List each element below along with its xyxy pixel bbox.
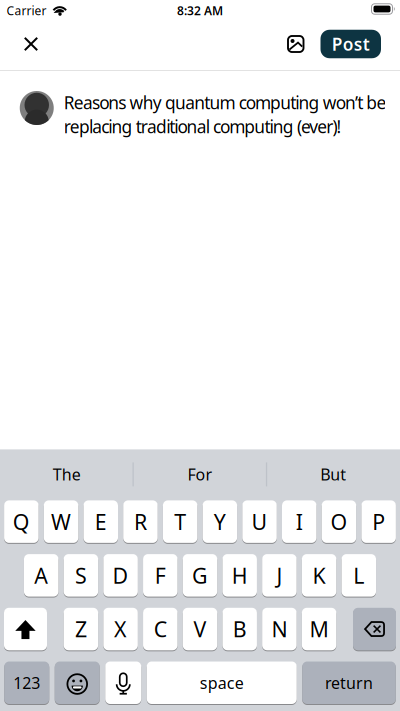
button[interactable]: U	[242, 500, 277, 543]
staticText: But	[320, 464, 346, 485]
staticText: X	[114, 615, 127, 643]
staticText: A	[34, 561, 48, 589]
staticText: W	[51, 507, 71, 536]
button[interactable]: But	[267, 449, 400, 499]
staticText: The	[53, 464, 81, 485]
button[interactable]: C	[143, 607, 178, 651]
staticText: space	[200, 672, 244, 693]
staticText: H	[232, 561, 248, 589]
button[interactable]: D	[103, 554, 138, 597]
button[interactable]: H	[222, 554, 257, 597]
staticText: N	[271, 615, 287, 643]
button[interactable]: Emoji	[55, 661, 100, 704]
button[interactable]: Post	[320, 30, 381, 58]
staticText: 8:32 AM	[177, 2, 223, 18]
button[interactable]: I	[282, 500, 316, 543]
button[interactable]: K	[302, 554, 336, 597]
staticText: E	[95, 507, 107, 536]
button[interactable]: M	[302, 607, 336, 651]
button[interactable]: G	[183, 554, 217, 597]
button[interactable]: return	[302, 661, 396, 704]
staticText: Carrier	[6, 2, 46, 18]
button[interactable]: Attach image	[288, 36, 320, 52]
staticText: P	[372, 507, 385, 536]
staticText: O	[330, 507, 347, 536]
staticText: K	[313, 561, 326, 589]
button[interactable]: A	[24, 554, 58, 597]
staticText: B	[233, 615, 247, 643]
button[interactable]: T	[163, 500, 197, 543]
button[interactable]: Close	[0, 37, 38, 51]
button[interactable]: X	[103, 607, 138, 651]
staticText: C	[154, 615, 167, 643]
staticText: R	[134, 507, 147, 536]
button[interactable]: V	[183, 607, 217, 651]
staticText: J	[276, 561, 282, 589]
button[interactable]: Delete	[353, 607, 396, 651]
staticText: F	[155, 561, 166, 589]
button[interactable]: N	[262, 607, 297, 651]
button[interactable]: Q	[4, 500, 39, 543]
button[interactable]: F	[143, 554, 178, 597]
button[interactable]: E	[83, 500, 118, 543]
button[interactable]: Y	[203, 500, 237, 543]
button[interactable]: The	[0, 449, 133, 499]
staticText: S	[75, 561, 87, 589]
button[interactable]: J	[262, 554, 297, 597]
button[interactable]: O	[322, 500, 356, 543]
button[interactable]: For	[133, 449, 267, 499]
staticText: T	[174, 507, 186, 536]
staticText: L	[353, 561, 364, 589]
staticText: V	[193, 615, 206, 643]
staticText: Z	[75, 615, 87, 643]
staticText: For	[187, 464, 212, 485]
staticText: D	[113, 561, 129, 589]
staticText: I	[296, 507, 303, 536]
button[interactable]: Shift	[4, 607, 47, 651]
button[interactable]: P	[361, 500, 396, 543]
button[interactable]: space	[147, 661, 297, 704]
staticText: return	[325, 672, 373, 693]
button[interactable]: R	[123, 500, 158, 543]
staticText: U	[251, 507, 267, 536]
button[interactable]: Z	[64, 607, 98, 651]
button[interactable]: Dictate	[105, 661, 141, 704]
button[interactable]: W	[44, 500, 78, 543]
staticText: G	[192, 561, 208, 589]
button[interactable]: S	[64, 554, 98, 597]
staticText: Reasons why quantum computing won’t be r…	[64, 91, 386, 138]
staticText: Q	[13, 507, 30, 536]
staticText: Post	[332, 32, 370, 55]
button[interactable]: B	[222, 607, 257, 651]
button[interactable]: L	[341, 554, 376, 597]
staticText: M	[310, 615, 329, 643]
staticText: Y	[214, 507, 226, 536]
button[interactable]: 123	[4, 661, 49, 704]
staticText: 123	[13, 672, 40, 693]
